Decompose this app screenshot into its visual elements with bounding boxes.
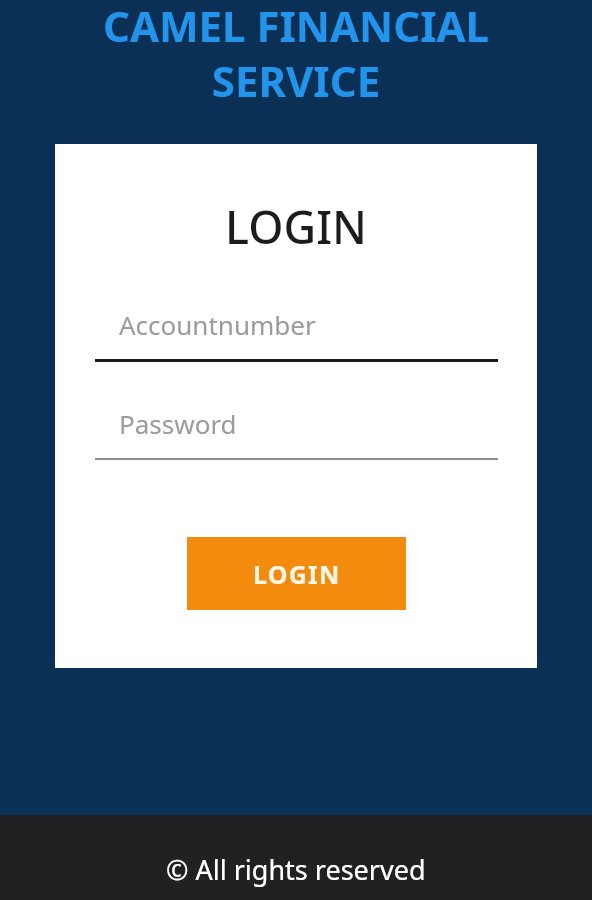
button[interactable]: LOGIN — [187, 537, 406, 610]
staticText: CAMEL FINANCIAL SERVICE — [0, 0, 592, 109]
button[interactable]: Password — [95, 400, 498, 460]
staticText: Accountnumber — [119, 307, 316, 342]
button[interactable]: Accountnumber — [95, 301, 498, 362]
staticText: Password — [119, 406, 237, 441]
staticText: LOGIN — [225, 196, 367, 257]
staticText: © All rights reserved — [166, 851, 426, 888]
staticText: LOGIN — [253, 557, 341, 591]
